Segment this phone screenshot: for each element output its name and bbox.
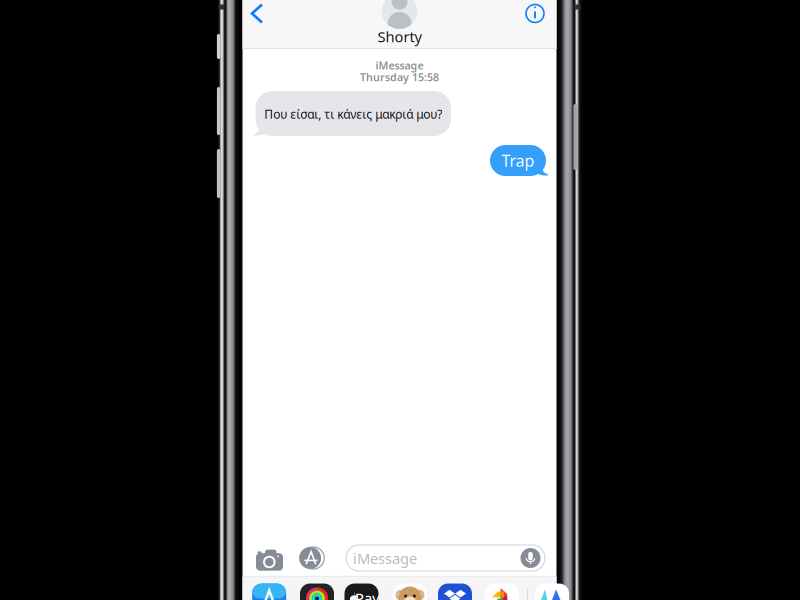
button[interactable]: Memoji — [393, 583, 427, 600]
button[interactable]: Details — [520, 0, 550, 28]
button[interactable]: Back — [245, 0, 279, 31]
staticText: Pay — [355, 588, 380, 600]
button[interactable]: Fitness — [300, 583, 334, 600]
staticText: Shorty — [377, 27, 421, 46]
staticText: Trap — [501, 150, 534, 171]
button[interactable]: Google Photos — [485, 583, 519, 600]
staticText: iMessage — [353, 548, 417, 568]
button[interactable]: Dropbox — [438, 583, 472, 600]
staticText: Που είσαι, τι κάνεις μακριά μου? — [264, 106, 442, 122]
staticText: Thursday 15:58 — [360, 70, 439, 84]
button[interactable]: Message field — [346, 545, 545, 571]
button[interactable]: Take photo — [254, 545, 284, 571]
button[interactable]: App Store — [252, 583, 286, 600]
button[interactable]: Apple Pay — [344, 583, 378, 600]
button[interactable]: iMessage apps — [298, 545, 326, 571]
button[interactable]: More apps — [535, 583, 569, 600]
staticText: iMessage — [375, 58, 423, 72]
